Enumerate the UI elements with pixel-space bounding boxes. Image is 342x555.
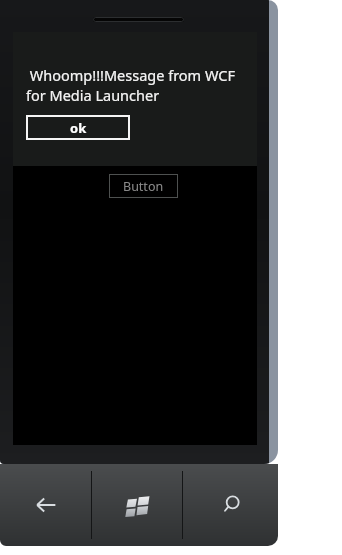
button[interactable]: Back: [0, 464, 91, 546]
staticText: Button: [123, 178, 164, 195]
staticText: ok: [70, 119, 87, 137]
button[interactable]: Button: [109, 174, 178, 198]
button[interactable]: ok: [26, 115, 130, 140]
staticText: Whoomp!!!Message from WCF for Media Laun…: [26, 65, 247, 105]
button[interactable]: Start: [92, 464, 182, 546]
button[interactable]: Search: [183, 464, 278, 546]
